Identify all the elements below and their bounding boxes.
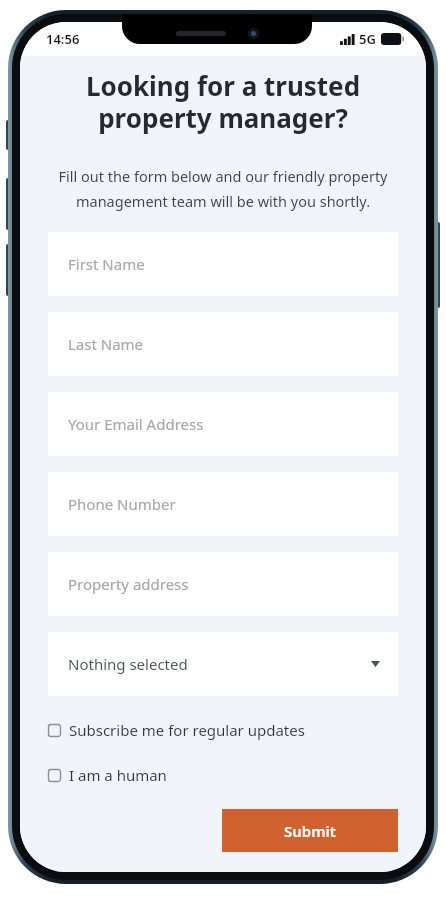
button[interactable]: Submit (222, 809, 398, 852)
staticText: Subscribe me for regular updates (69, 720, 305, 740)
button[interactable]: Nothing selected (48, 632, 398, 696)
staticText: Nothing selected (68, 654, 188, 674)
staticText: 14:56 (46, 30, 80, 48)
button[interactable]: I am a human (48, 765, 398, 785)
staticText: Last Name (68, 334, 144, 354)
staticText: Your Email Address (68, 414, 204, 434)
button[interactable]: First Name (48, 232, 398, 296)
button[interactable]: Phone Number (48, 472, 398, 536)
staticText: First Name (68, 254, 145, 274)
button[interactable]: Subscribe me for regular updates (48, 720, 398, 740)
button[interactable]: Last Name (48, 312, 398, 376)
staticText: I am a human (69, 765, 167, 785)
staticText: Phone Number (68, 494, 176, 514)
button[interactable]: Your Email Address (48, 392, 398, 456)
staticText: Submit (284, 821, 336, 841)
button[interactable]: Property address (48, 552, 398, 616)
staticText: Property address (68, 574, 189, 594)
staticText: 5G (359, 30, 376, 48)
staticText: Fill out the form below and our friendly… (30, 166, 416, 212)
staticText: Looking for a trusted property manager? (36, 68, 410, 136)
